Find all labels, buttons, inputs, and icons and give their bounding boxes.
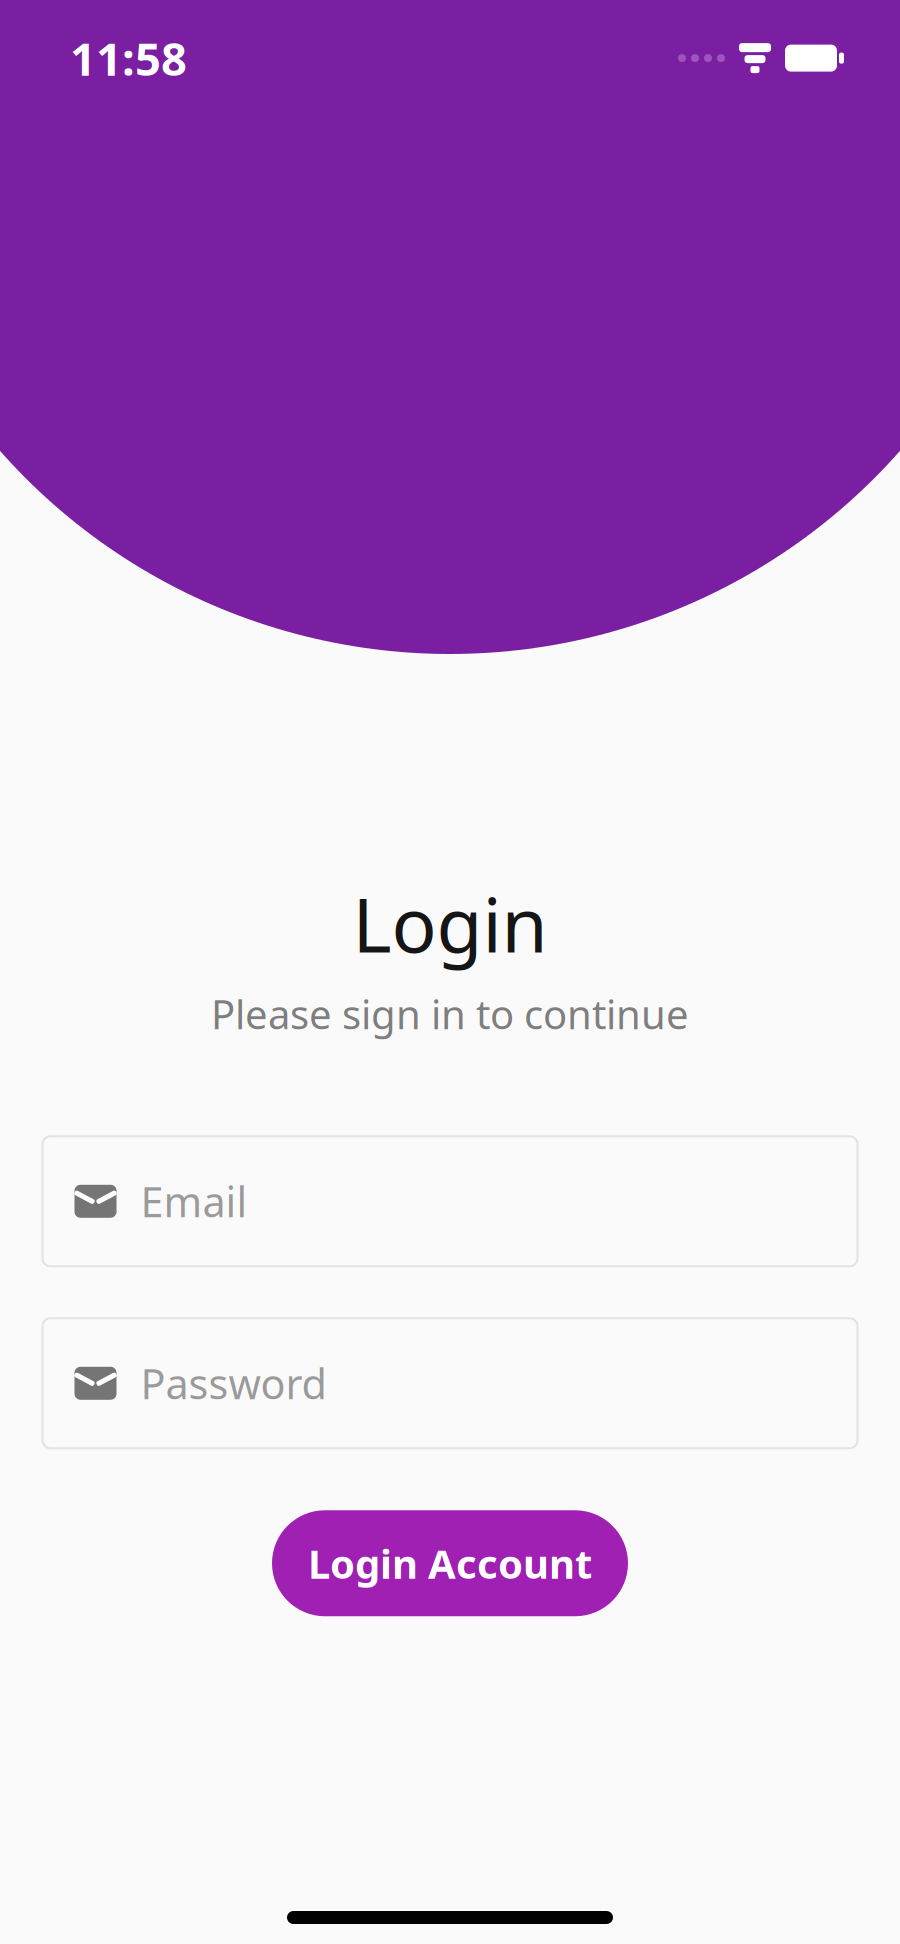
staticText: Email bbox=[140, 1174, 247, 1229]
staticText: Login Account bbox=[308, 1537, 592, 1590]
staticText: Password bbox=[140, 1356, 326, 1411]
staticText: Please sign in to continue bbox=[211, 987, 689, 1040]
staticText: Login bbox=[352, 874, 547, 973]
button[interactable]: Login Account bbox=[272, 1510, 628, 1616]
staticText: 11:58 bbox=[70, 28, 187, 88]
button[interactable]: Password bbox=[42, 1318, 857, 1448]
button[interactable]: Email bbox=[42, 1136, 857, 1266]
